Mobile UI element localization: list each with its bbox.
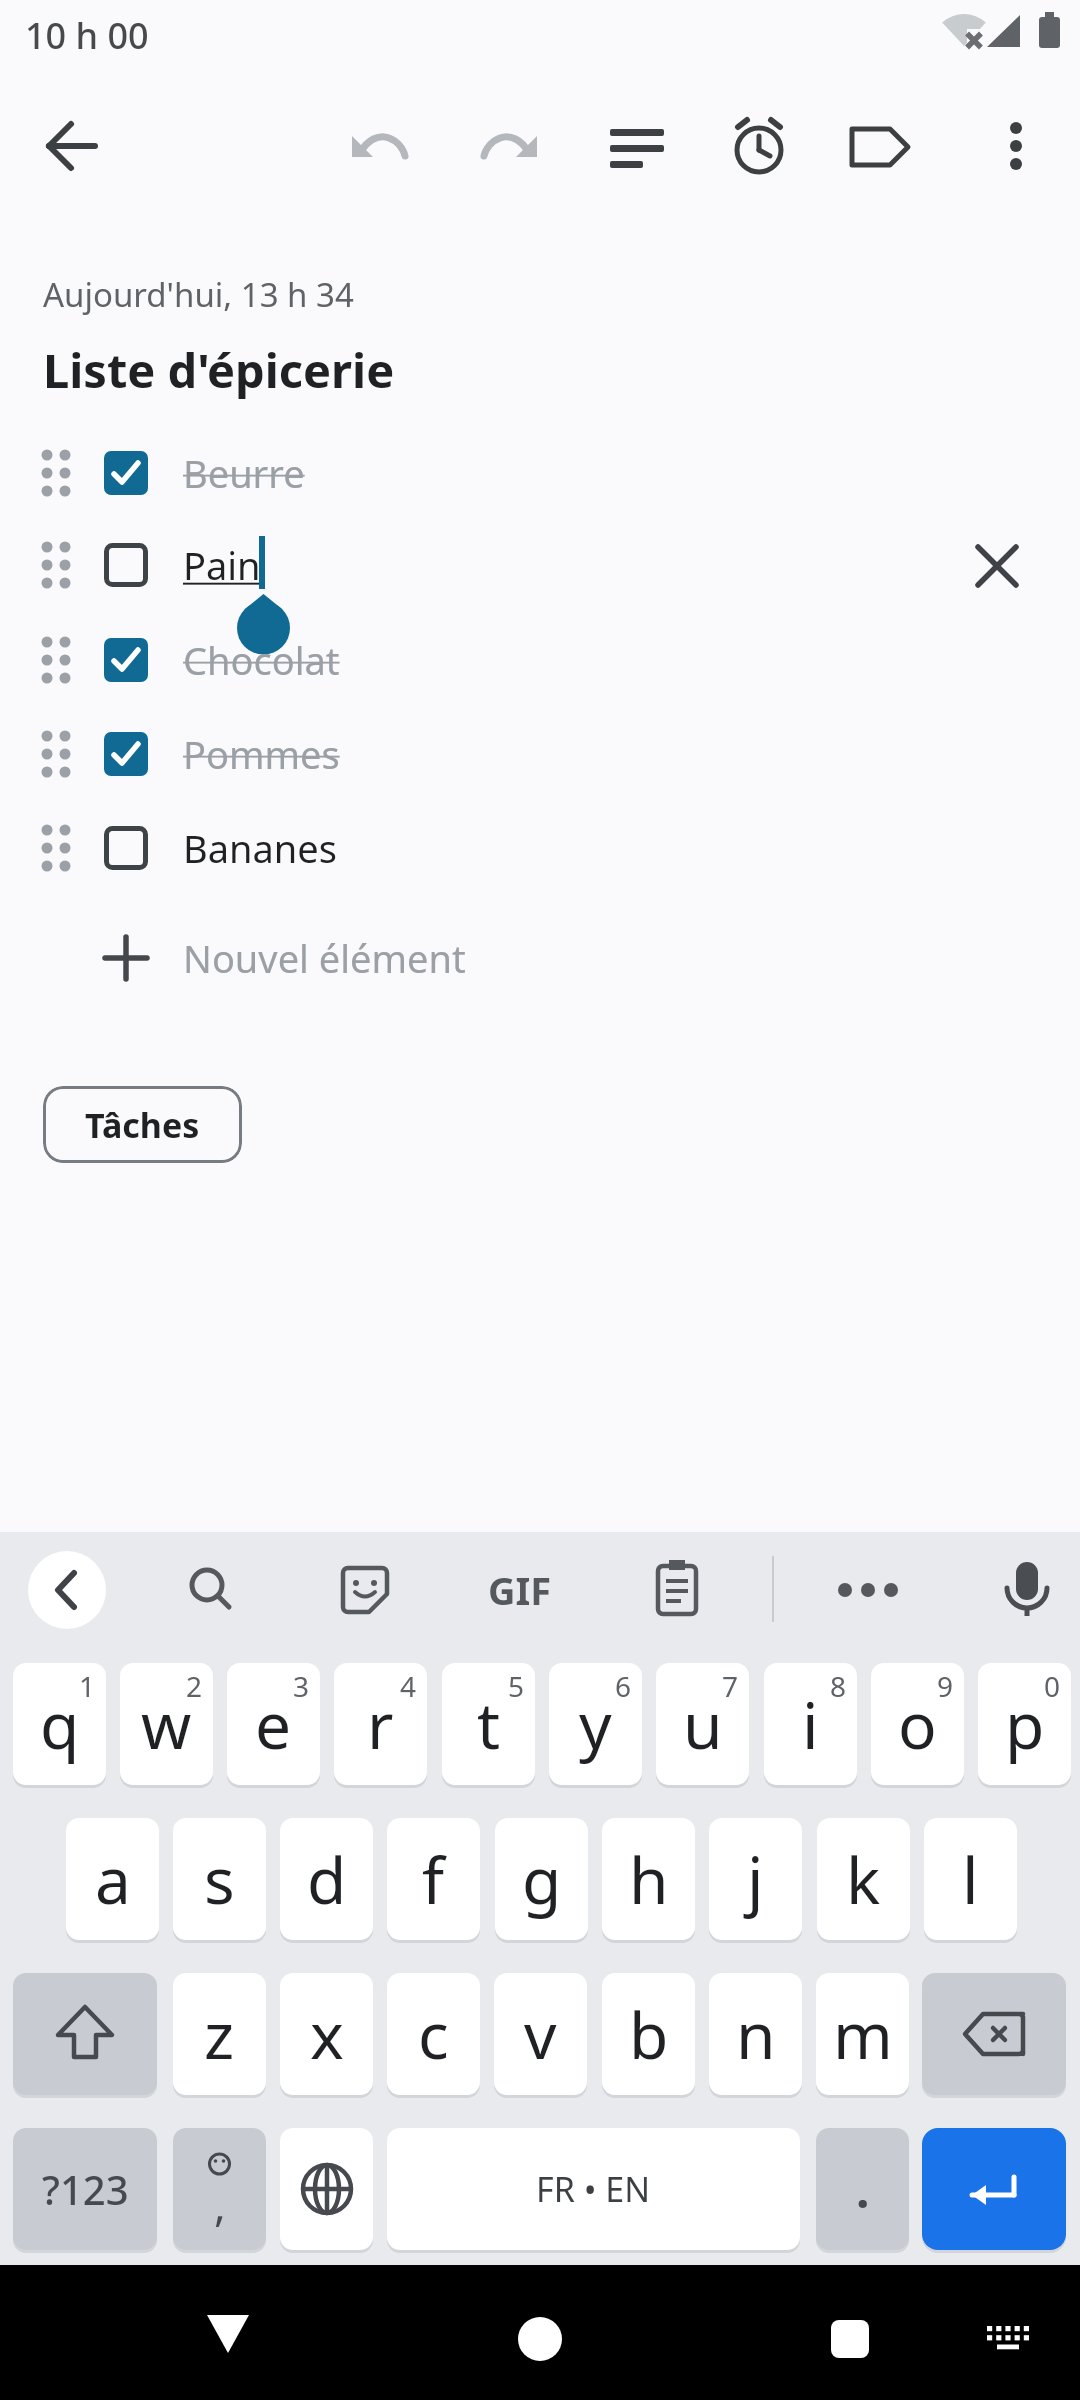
button[interactable]: [832, 1554, 904, 1626]
button[interactable]: [922, 2128, 1066, 2250]
button[interactable]: [104, 638, 148, 682]
staticText: b: [629, 1991, 669, 2078]
button[interactable]: GIF: [470, 1554, 570, 1626]
staticText: t: [477, 1681, 501, 1768]
staticText: j: [747, 1836, 764, 1923]
button[interactable]: [280, 2128, 373, 2250]
button[interactable]: v: [494, 1973, 587, 2095]
staticText: p: [1005, 1681, 1045, 1768]
button[interactable]: [922, 1973, 1066, 2095]
button[interactable]: [814, 2303, 886, 2375]
button[interactable]: [13, 1973, 157, 2095]
button[interactable]: Nouvel élément: [0, 911, 1080, 1005]
button[interactable]: Pommes: [0, 707, 1080, 801]
button[interactable]: Beurre: [0, 426, 1080, 520]
staticText: ,: [214, 2174, 226, 2234]
staticText: l: [962, 1836, 979, 1923]
staticText: 4: [400, 1667, 417, 1705]
staticText: 7: [722, 1667, 739, 1705]
button[interactable]: ?123: [13, 2128, 157, 2250]
button[interactable]: [104, 543, 148, 587]
button[interactable]: [192, 2301, 264, 2373]
button[interactable]: n: [709, 1973, 802, 2095]
button[interactable]: y: [549, 1663, 642, 1785]
button[interactable]: l: [924, 1818, 1017, 1940]
button[interactable]: f: [387, 1818, 480, 1940]
button[interactable]: [470, 110, 542, 182]
button[interactable]: o: [871, 1663, 964, 1785]
button[interactable]: [641, 1554, 713, 1626]
staticText: Chocolat: [183, 634, 340, 686]
staticText: 10 h 00: [25, 11, 149, 60]
staticText: v: [524, 1991, 557, 2078]
staticText: 0: [1044, 1667, 1061, 1705]
button[interactable]: [104, 451, 148, 495]
staticText: 2: [186, 1667, 203, 1705]
button[interactable]: [329, 1554, 401, 1626]
button[interactable]: x: [280, 1973, 373, 2095]
staticText: m: [833, 1991, 893, 2078]
staticText: Liste d'épicerie: [43, 338, 395, 402]
button[interactable]: [104, 826, 148, 870]
button[interactable]: [347, 110, 419, 182]
button[interactable]: i: [764, 1663, 857, 1785]
button[interactable]: d: [280, 1818, 373, 1940]
button[interactable]: q: [13, 1663, 106, 1785]
button[interactable]: [991, 1554, 1063, 1626]
staticText: w: [141, 1681, 192, 1768]
button[interactable]: g: [495, 1818, 588, 1940]
staticText: x: [310, 1991, 344, 2078]
staticText: 5: [508, 1667, 525, 1705]
button[interactable]: [972, 2305, 1044, 2377]
staticText: ?123: [42, 2162, 129, 2216]
button[interactable]: FR • EN: [387, 2128, 800, 2250]
button[interactable]: Chocolat: [0, 613, 1080, 707]
button[interactable]: e: [227, 1663, 320, 1785]
button[interactable]: b: [602, 1973, 695, 2095]
button[interactable]: [28, 1551, 106, 1629]
button[interactable]: [723, 110, 795, 182]
button[interactable]: [980, 110, 1052, 182]
staticText: Beurre: [183, 447, 305, 499]
button[interactable]: c: [387, 1973, 480, 2095]
button[interactable]: p: [978, 1663, 1071, 1785]
button[interactable]: ,: [173, 2128, 266, 2250]
staticText: Pain: [183, 539, 261, 591]
button[interactable]: t: [442, 1663, 535, 1785]
staticText: e: [255, 1681, 292, 1768]
button[interactable]: w: [120, 1663, 213, 1785]
staticText: r: [367, 1681, 394, 1768]
button[interactable]: Tâches: [43, 1086, 242, 1163]
staticText: 3: [293, 1667, 310, 1705]
staticText: u: [683, 1681, 723, 1768]
button[interactable]: z: [173, 1973, 266, 2095]
button[interactable]: u: [656, 1663, 749, 1785]
staticText: GIF: [488, 1564, 552, 1616]
button[interactable]: [844, 110, 916, 182]
button[interactable]: [104, 732, 148, 776]
button[interactable]: [175, 1554, 247, 1626]
button[interactable]: r: [334, 1663, 427, 1785]
staticText: k: [846, 1836, 881, 1923]
button[interactable]: Bananes: [0, 801, 1080, 895]
button[interactable]: m: [816, 1973, 909, 2095]
staticText: d: [307, 1836, 347, 1923]
button[interactable]: [600, 110, 672, 182]
button[interactable]: Pain: [0, 518, 1080, 612]
button[interactable]: h: [602, 1818, 695, 1940]
button[interactable]: [36, 110, 108, 182]
staticText: q: [40, 1681, 80, 1768]
staticText: FR • EN: [536, 2166, 651, 2212]
button[interactable]: j: [709, 1818, 802, 1940]
staticText: 9: [937, 1667, 954, 1705]
button[interactable]: s: [173, 1818, 266, 1940]
button[interactable]: k: [817, 1818, 910, 1940]
button[interactable]: [961, 530, 1033, 602]
staticText: 8: [830, 1667, 847, 1705]
button[interactable]: [504, 2303, 576, 2375]
staticText: .: [856, 2157, 870, 2222]
staticText: Nouvel élément: [183, 932, 466, 984]
button[interactable]: .: [816, 2128, 909, 2250]
staticText: f: [422, 1836, 445, 1923]
button[interactable]: a: [66, 1818, 159, 1940]
